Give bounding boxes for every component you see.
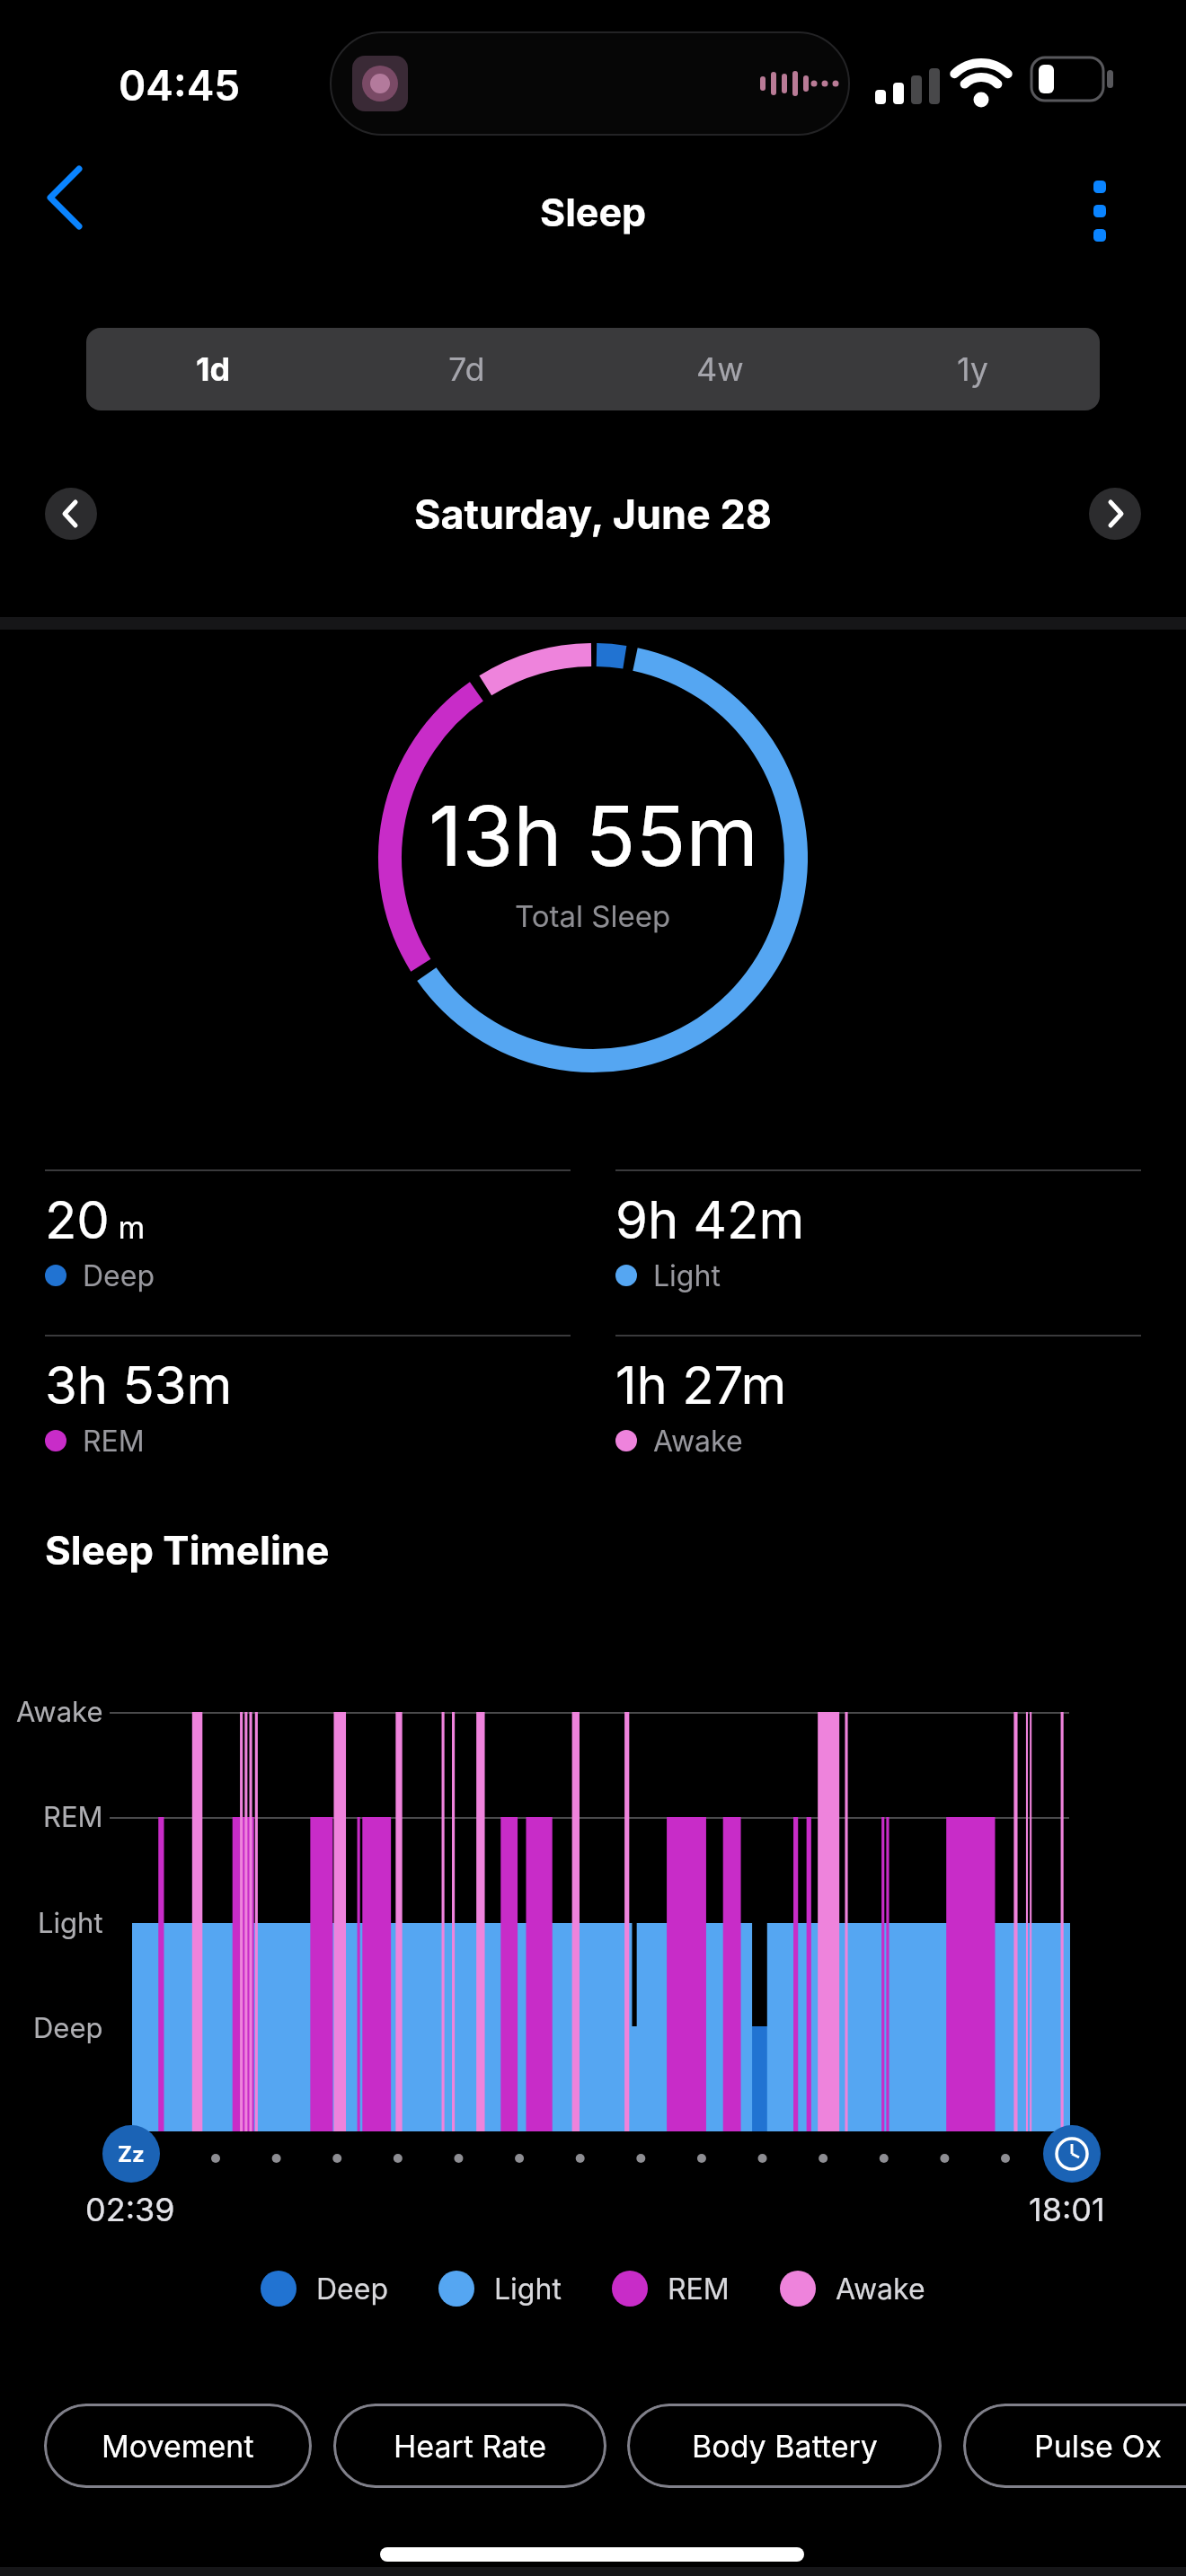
button[interactable]: Heart Rate bbox=[333, 2404, 606, 2488]
staticText: 18:01 bbox=[1029, 2190, 1105, 2229]
staticText: 7d bbox=[448, 349, 485, 389]
staticText: 1y bbox=[957, 349, 989, 389]
staticText: Heart Rate bbox=[394, 2428, 546, 2465]
staticText: Deep bbox=[83, 1258, 155, 1293]
staticText: Light bbox=[38, 1906, 103, 1940]
staticText: 4w bbox=[696, 349, 744, 389]
button[interactable] bbox=[1051, 166, 1141, 256]
staticText: Pulse Ox bbox=[1034, 2428, 1162, 2465]
staticText: 1h 27m bbox=[615, 1354, 787, 1416]
staticText: Awake bbox=[16, 1695, 103, 1729]
staticText: 04:45 bbox=[119, 60, 241, 110]
button[interactable]: 7d bbox=[340, 328, 593, 410]
staticText: Deep bbox=[33, 2011, 103, 2045]
staticText: 9h 42m bbox=[615, 1188, 805, 1251]
staticText: 13h 55m bbox=[429, 786, 758, 886]
staticText: Sleep Timeline bbox=[45, 1526, 330, 1574]
staticText: REM bbox=[43, 1800, 103, 1834]
button[interactable] bbox=[45, 488, 97, 540]
staticText: REM bbox=[668, 2272, 730, 2307]
staticText: Movement bbox=[102, 2428, 254, 2465]
staticText: 02:39 bbox=[85, 2190, 175, 2229]
staticText: Awake bbox=[653, 1424, 743, 1459]
staticText: Zz bbox=[118, 2141, 145, 2167]
button[interactable]: Pulse Ox bbox=[963, 2404, 1186, 2488]
staticText: Total Sleep bbox=[515, 898, 671, 934]
button[interactable] bbox=[27, 144, 117, 234]
staticText: Saturday, June 28 bbox=[414, 490, 773, 538]
button[interactable]: 4w bbox=[593, 328, 846, 410]
button[interactable]: 1d bbox=[86, 328, 340, 410]
staticText: Awake bbox=[836, 2272, 925, 2307]
staticText: Deep bbox=[316, 2272, 388, 2307]
button[interactable]: Movement bbox=[44, 2404, 312, 2488]
staticText: Light bbox=[653, 1258, 721, 1293]
staticText: 3h 53m bbox=[45, 1354, 233, 1416]
staticText: 1d bbox=[196, 349, 231, 389]
button[interactable]: Body Battery bbox=[627, 2404, 942, 2488]
button[interactable]: 1y bbox=[846, 328, 1100, 410]
button[interactable] bbox=[1089, 488, 1141, 540]
staticText: Light bbox=[494, 2272, 562, 2307]
staticText: Sleep bbox=[540, 189, 647, 235]
staticText: Body Battery bbox=[692, 2428, 878, 2465]
staticText: 20 m bbox=[45, 1188, 146, 1251]
staticText: REM bbox=[83, 1424, 145, 1459]
